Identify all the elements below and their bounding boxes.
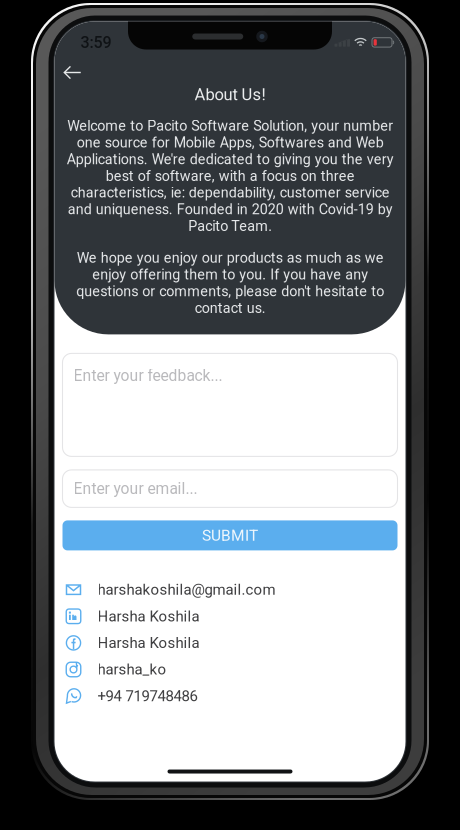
staticText: harsha_ko xyxy=(97,661,166,678)
staticText: +94 719748486 xyxy=(97,687,197,705)
button[interactable]: +94 719748486 xyxy=(62,683,397,709)
button[interactable]: SUBMIT xyxy=(62,520,397,550)
staticText: Harsha Koshila xyxy=(97,634,199,652)
staticText: harshakoshila@gmail.com xyxy=(97,581,275,598)
staticText: Enter your email... xyxy=(73,479,197,498)
button[interactable]: harsha_ko xyxy=(62,656,397,683)
staticText: About Us! xyxy=(194,85,265,104)
staticText: Enter your feedback... xyxy=(73,366,222,385)
button[interactable]: Harsha Koshila xyxy=(62,603,397,630)
staticText: 3:59 xyxy=(80,33,111,52)
button[interactable]: harshakoshila@gmail.com xyxy=(62,576,397,603)
staticText: Harsha Koshila xyxy=(97,608,199,625)
button[interactable]: Enter your email... xyxy=(62,470,397,507)
staticText: We hope you enjoy our products as much a… xyxy=(76,249,384,316)
staticText: SUBMIT xyxy=(202,526,258,544)
button[interactable]: Back xyxy=(54,55,90,89)
staticText: Welcome to Pacito Software Solution, you… xyxy=(66,117,393,234)
button[interactable]: Enter your feedback... xyxy=(62,353,397,456)
button[interactable]: Harsha Koshila xyxy=(62,630,397,656)
